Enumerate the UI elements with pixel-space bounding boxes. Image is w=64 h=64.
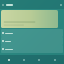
button[interactable] — [1, 45, 63, 53]
button[interactable]: Explore — [16, 55, 31, 64]
button[interactable]: Profile — [47, 55, 63, 64]
button[interactable]: Library — [31, 55, 47, 64]
button[interactable] — [1, 29, 63, 37]
button[interactable] — [1, 37, 63, 45]
button[interactable]: Home — [1, 55, 16, 64]
button[interactable] — [1, 10, 58, 28]
